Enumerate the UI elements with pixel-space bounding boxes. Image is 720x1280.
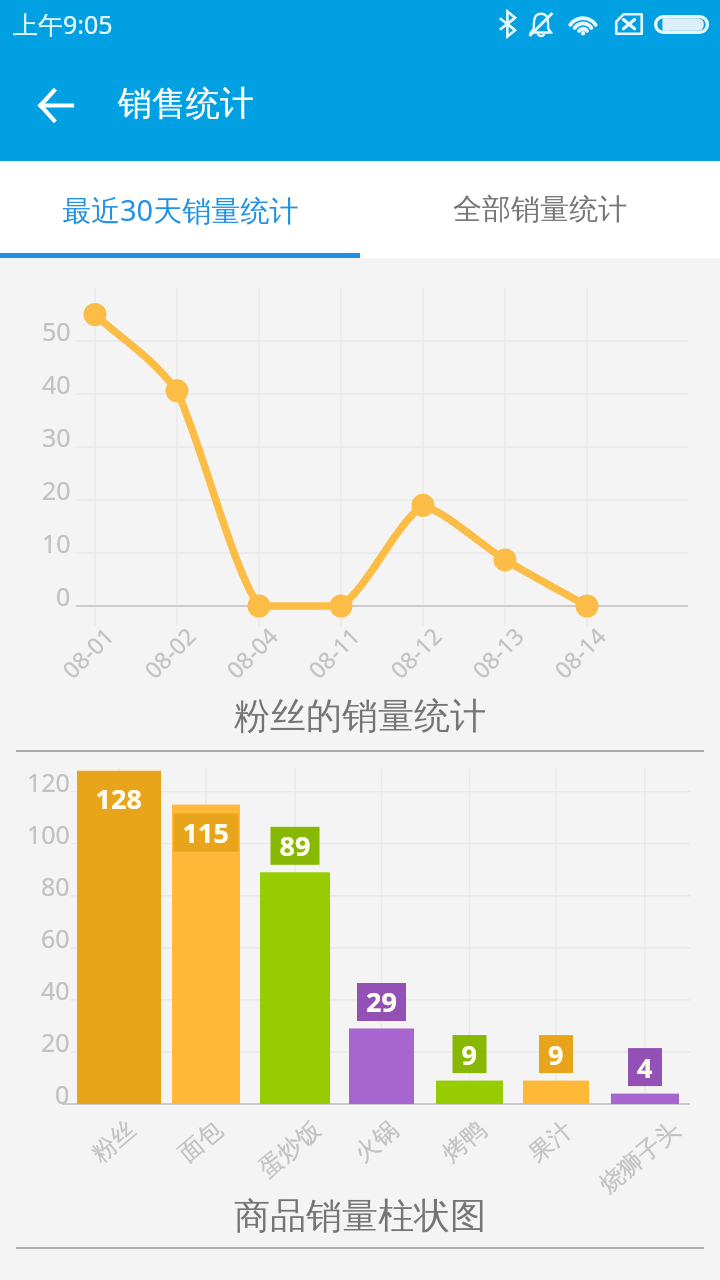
button[interactable]: Back <box>24 73 88 137</box>
button[interactable]: 最近30天销量统计 <box>0 161 360 258</box>
staticText: 粉丝的销量统计 <box>234 693 486 738</box>
staticText: 商品销量柱状图 <box>234 1193 486 1238</box>
staticText: 销售统计 <box>118 82 254 125</box>
staticText: 最近30天销量统计 <box>62 190 299 230</box>
button[interactable]: 全部销量统计 <box>360 161 720 258</box>
staticText: 上午9:05 <box>13 7 113 41</box>
staticText: 全部销量统计 <box>453 191 627 228</box>
